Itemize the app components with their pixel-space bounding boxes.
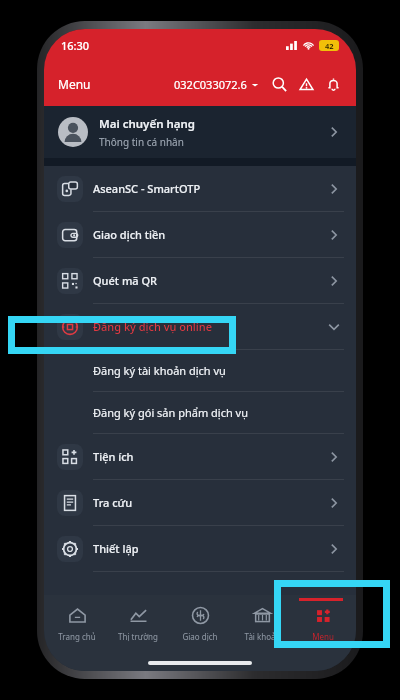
staticText: Đăng ký tài khoản dịch vụ: [93, 363, 226, 378]
button[interactable]: 032C033072.6: [174, 71, 259, 98]
button[interactable]: Giao dịch: [171, 595, 229, 655]
button[interactable]: Notifications: [321, 72, 345, 96]
staticText: Trang chủ: [58, 631, 96, 642]
button[interactable]: Tra cứu: [44, 480, 356, 525]
staticText: Quét mã QR: [93, 273, 158, 288]
button[interactable]: Search: [267, 72, 291, 96]
button[interactable]: Đăng ký dịch vụ online: [44, 304, 356, 349]
staticText: Giao dịch: [182, 631, 218, 642]
button[interactable]: Alerts: [294, 72, 318, 96]
button[interactable]: AseanSC - SmartOTP: [44, 166, 356, 211]
staticText: 032C033072.6: [174, 77, 247, 92]
staticText: Tài khoản: [244, 631, 281, 642]
staticText: Thị trường: [118, 631, 158, 642]
staticText: Tra cứu: [93, 495, 133, 510]
button[interactable]: Mai chuyến hạng: [44, 106, 356, 158]
staticText: 42: [325, 41, 334, 51]
staticText: AseanSC - SmartOTP: [93, 181, 201, 196]
button[interactable]: Tiện ích: [44, 434, 356, 479]
button[interactable]: Thị trường: [109, 595, 167, 655]
staticText: Đăng ký dịch vụ online: [93, 319, 212, 334]
staticText: Đăng ký gói sản phẩm dịch vụ: [93, 405, 248, 420]
button[interactable]: Đăng ký tài khoản dịch vụ: [44, 350, 356, 391]
button[interactable]: Giao dịch tiền: [44, 212, 356, 257]
button[interactable]: Tài khoản: [233, 595, 291, 655]
button[interactable]: Trang chủ: [48, 595, 106, 655]
button[interactable]: Đăng ký gói sản phẩm dịch vụ: [44, 392, 356, 433]
staticText: Menu: [312, 631, 334, 642]
staticText: Tiện ích: [93, 449, 134, 464]
staticText: 16:30: [61, 38, 90, 53]
staticText: Thiết lập: [93, 541, 139, 556]
staticText: Mai chuyến hạng: [99, 116, 196, 132]
button[interactable]: Menu: [294, 595, 352, 655]
button[interactable]: Quét mã QR: [44, 258, 356, 303]
staticText: Giao dịch tiền: [93, 227, 166, 242]
button[interactable]: Thiết lập: [44, 526, 356, 571]
staticText: Menu: [58, 76, 91, 92]
staticText: Thông tin cá nhân: [99, 135, 184, 149]
